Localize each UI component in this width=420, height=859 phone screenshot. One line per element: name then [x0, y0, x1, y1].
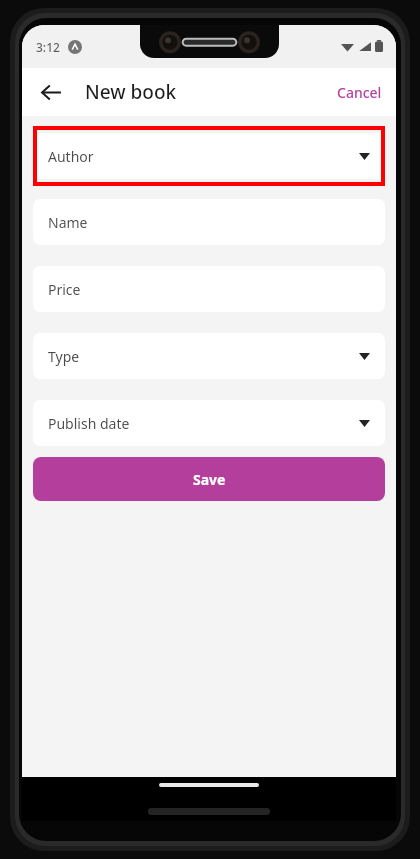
- button[interactable]: Cancel: [323, 75, 396, 110]
- button[interactable]: Publish date: [33, 400, 385, 446]
- button[interactable]: Name: [33, 199, 385, 245]
- staticText: Save: [193, 470, 226, 489]
- staticText: New book: [85, 79, 177, 105]
- staticText: Publish date: [48, 414, 130, 433]
- staticText: Price: [48, 280, 81, 299]
- staticText: 3:12: [36, 39, 60, 55]
- staticText: Type: [48, 347, 80, 366]
- staticText: Cancel: [337, 83, 382, 102]
- staticText: Author: [48, 147, 94, 166]
- button[interactable]: Save: [33, 457, 385, 501]
- staticText: Name: [48, 213, 88, 232]
- button[interactable]: Type: [33, 333, 385, 379]
- button[interactable]: Price: [33, 266, 385, 312]
- button[interactable]: Back: [31, 72, 71, 112]
- button[interactable]: Author: [33, 133, 385, 179]
